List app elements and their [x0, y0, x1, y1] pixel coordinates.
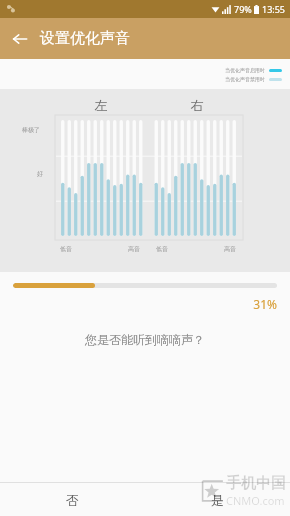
staticText: 左 — [55, 97, 147, 113]
staticText: 手机中国 — [226, 474, 286, 493]
staticText: 低音 — [60, 245, 72, 253]
staticText: 当优化声音启用时 — [225, 67, 265, 73]
staticText: 右 — [151, 97, 243, 113]
staticText: 高音 — [128, 245, 140, 253]
button[interactable]: 是 — [145, 483, 290, 516]
staticText: 低音 — [156, 245, 168, 253]
staticText: 79% — [234, 3, 252, 15]
staticText: 棒极了 — [22, 126, 40, 134]
staticText: 您是否能听到嘀嘀声？ — [0, 332, 290, 347]
staticText: 否 — [66, 492, 79, 508]
staticText: 好 — [37, 170, 43, 178]
button[interactable]: Back — [0, 19, 40, 59]
button[interactable]: 否 — [0, 483, 145, 516]
staticText: 31% — [13, 296, 277, 312]
staticText: 13:55 — [262, 3, 286, 15]
staticText: 高音 — [224, 245, 236, 253]
staticText: 当优化声音禁用时 — [225, 76, 265, 82]
staticText: CNMO.com — [226, 493, 285, 508]
staticText: 是 — [211, 492, 224, 508]
staticText: 设置优化声音 — [40, 29, 130, 48]
